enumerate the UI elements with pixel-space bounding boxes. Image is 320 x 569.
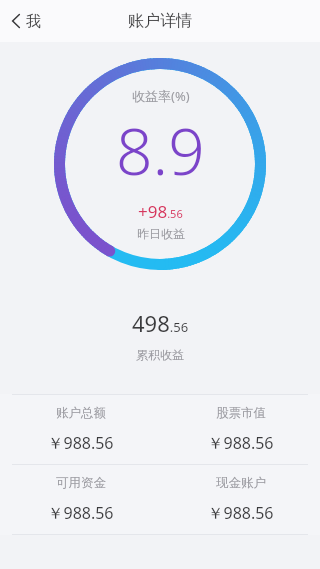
button[interactable]: 账户总额 xyxy=(0,395,160,464)
staticText: 账户详情 xyxy=(128,11,192,31)
staticText: 可用资金 xyxy=(56,475,106,491)
button[interactable]: 可用资金 xyxy=(0,465,160,534)
staticText: ￥988.56 xyxy=(47,432,114,454)
other: Back xyxy=(12,14,20,28)
staticText: 昨日收益 xyxy=(137,226,185,241)
staticText: +98.56 xyxy=(138,200,183,223)
staticText: ￥988.56 xyxy=(47,502,114,524)
staticText: ￥988.56 xyxy=(207,432,274,454)
button[interactable]: 股票市值 xyxy=(160,395,320,464)
staticText: 8.9 xyxy=(116,107,205,194)
button[interactable]: Back xyxy=(0,0,53,42)
staticText: 累积收益 xyxy=(136,347,184,362)
staticText: 账户总额 xyxy=(56,405,106,421)
staticText: 我 xyxy=(26,12,41,31)
button[interactable]: 现金账户 xyxy=(160,465,320,534)
staticText: 股票市值 xyxy=(216,405,266,421)
staticText: ￥988.56 xyxy=(207,502,274,524)
staticText: 498.56 xyxy=(132,308,189,338)
staticText: 收益率(%) xyxy=(132,87,190,105)
staticText: 现金账户 xyxy=(216,475,266,491)
